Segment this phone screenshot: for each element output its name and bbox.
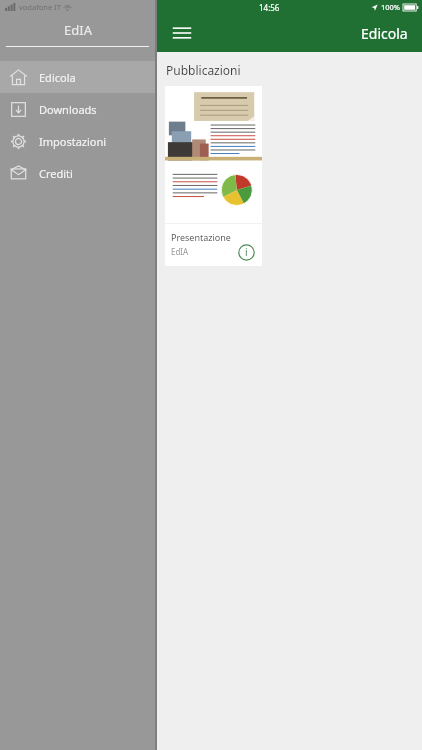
button[interactable]: Crediti	[0, 157, 155, 189]
staticText: Edicola	[361, 24, 408, 43]
staticText: Edicola	[39, 70, 76, 85]
staticText: vodafone IT	[19, 2, 61, 12]
staticText: Downloads	[39, 102, 97, 117]
staticText: 100%	[381, 2, 401, 12]
button[interactable]: Downloads	[0, 93, 155, 125]
button[interactable]: Info	[236, 242, 256, 262]
button[interactable]: Impostazioni	[0, 125, 155, 157]
button[interactable]: Presentazione	[165, 86, 262, 266]
staticText: EdIA	[171, 246, 189, 257]
button[interactable]: Edicola	[0, 61, 155, 93]
staticText: Impostazioni	[39, 134, 107, 149]
staticText: i	[245, 245, 248, 259]
staticText: Pubblicazioni	[166, 62, 241, 78]
staticText: Presentazione	[171, 231, 231, 243]
button[interactable]: Menu	[165, 16, 199, 50]
staticText: Crediti	[39, 166, 73, 181]
staticText: EdIA	[64, 21, 92, 39]
staticText: 14:56	[259, 2, 280, 13]
